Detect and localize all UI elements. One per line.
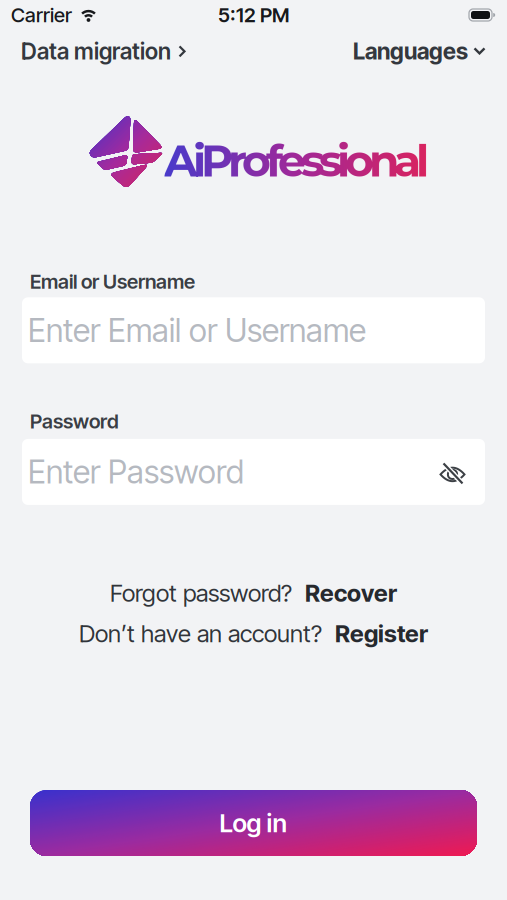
button[interactable]: Show password [439,462,466,485]
staticText: Languages [353,38,468,65]
staticText: Password [30,409,119,433]
button[interactable]: Languages [353,38,486,65]
staticText: Log in [219,808,287,838]
button[interactable]: Recover [305,579,397,607]
staticText: 5:12 PM [218,3,289,27]
staticText: Data migration [21,38,171,65]
staticText: Register [335,619,428,647]
staticText: Don’t have an account? [79,619,322,647]
button[interactable]: Register [335,619,428,647]
staticText: Enter Email or Username [28,311,366,349]
button[interactable]: Data migration [21,38,187,65]
button[interactable]: Log in [30,790,477,856]
staticText: Forgot password? [110,579,292,607]
staticText: Email or Username [30,270,195,293]
staticText: Carrier [11,3,72,27]
staticText: Recover [305,579,397,607]
staticText: Enter Password [28,453,244,491]
